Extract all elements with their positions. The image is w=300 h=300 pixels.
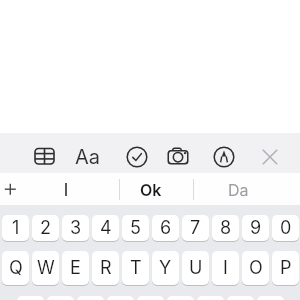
button[interactable]: Da [218,175,258,203]
button[interactable] [77,296,104,300]
staticText: Y [159,257,172,279]
staticText: 1 [12,217,20,239]
button[interactable] [166,145,192,169]
button[interactable]: 9 [242,215,269,241]
staticText: Q [9,257,23,279]
button[interactable]: Q [2,251,29,285]
staticText: Ok [140,180,162,199]
staticText: 3 [70,217,82,239]
button[interactable]: 1 [2,215,29,241]
staticText: 6 [160,217,172,239]
staticText: T [130,257,142,279]
button[interactable]: 3 [62,215,89,241]
staticText: Aa [75,145,101,169]
button[interactable] [126,146,148,168]
staticText: 0 [280,217,292,239]
button[interactable]: R [92,251,119,285]
staticText: 4 [100,217,112,239]
staticText: R [100,257,112,279]
button[interactable]: P [272,251,299,285]
staticText: 8 [220,217,232,239]
staticText: 7 [190,217,201,239]
button[interactable] [213,146,235,168]
button[interactable]: O [242,251,269,285]
staticText: 9 [250,217,262,239]
staticText: W [37,257,55,279]
staticText: E [70,257,81,279]
button[interactable]: W [32,251,59,285]
button[interactable] [33,146,56,166]
button[interactable] [227,296,254,300]
button[interactable]: U [182,251,209,285]
button[interactable] [167,296,194,300]
button[interactable] [257,296,284,300]
staticText: Da [228,180,249,199]
button[interactable]: 5 [122,215,149,241]
button[interactable]: Y [152,251,179,285]
staticText: I [223,257,228,279]
button[interactable] [17,296,44,300]
button[interactable]: Aa [75,144,101,170]
button[interactable] [2,181,19,198]
button[interactable]: 8 [212,215,239,241]
button[interactable]: 6 [152,215,179,241]
button[interactable] [137,296,164,300]
button[interactable]: Ok [131,175,171,203]
button[interactable]: I [212,251,239,285]
button[interactable] [260,147,280,167]
button[interactable] [107,296,134,300]
button[interactable]: 0 [272,215,299,241]
staticText: P [280,257,292,279]
staticText: 5 [130,217,141,239]
button[interactable]: T [122,251,149,285]
button[interactable] [47,296,74,300]
staticText: O [249,257,263,279]
button[interactable]: E [62,251,89,285]
button[interactable] [197,296,224,300]
button[interactable]: 2 [32,215,59,241]
button[interactable]: 7 [182,215,209,241]
staticText: 2 [40,217,51,239]
button[interactable] [46,175,86,203]
staticText: U [189,257,203,279]
button[interactable]: 4 [92,215,119,241]
